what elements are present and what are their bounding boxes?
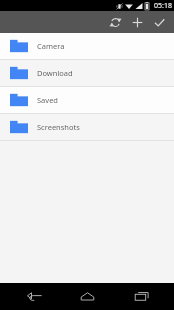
- staticText: 05:18: [154, 1, 172, 11]
- button[interactable]: Screenshots: [0, 114, 174, 140]
- staticText: Screenshots: [37, 122, 80, 132]
- button[interactable]: Home: [67, 283, 107, 310]
- button[interactable]: Refresh: [104, 11, 126, 33]
- button[interactable]: Back: [14, 283, 54, 310]
- staticText: Download: [37, 68, 73, 78]
- button[interactable]: Saved: [0, 87, 174, 113]
- staticText: Saved: [37, 95, 58, 105]
- button[interactable]: Confirm: [148, 11, 170, 33]
- button[interactable]: Download: [0, 60, 174, 86]
- button[interactable]: Add: [126, 11, 148, 33]
- staticText: Camera: [37, 41, 65, 51]
- button[interactable]: Recents: [121, 283, 161, 310]
- button[interactable]: Camera: [0, 33, 174, 59]
